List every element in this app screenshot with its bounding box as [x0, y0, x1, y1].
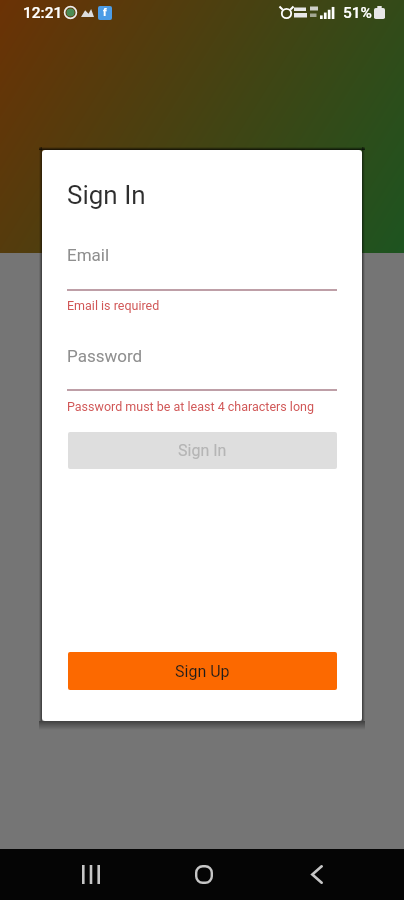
button[interactable]: Sign Up [68, 652, 337, 690]
staticText: Email is required [67, 298, 160, 313]
button[interactable]: Recent apps [66, 858, 116, 891]
button[interactable]: Home [179, 858, 229, 891]
staticText: Email [67, 245, 110, 265]
button[interactable]: Sign In [68, 432, 337, 469]
staticText: 12:21 [23, 4, 63, 22]
staticText: Password [67, 346, 143, 366]
staticText: Sign In [178, 441, 227, 460]
staticText: Sign Up [175, 662, 230, 681]
staticText: Password must be at least 4 characters l… [67, 399, 314, 414]
staticText: f [103, 7, 107, 19]
button[interactable]: Back [292, 858, 342, 891]
staticText: 51% [343, 4, 373, 22]
staticText: Sign In [67, 180, 146, 210]
